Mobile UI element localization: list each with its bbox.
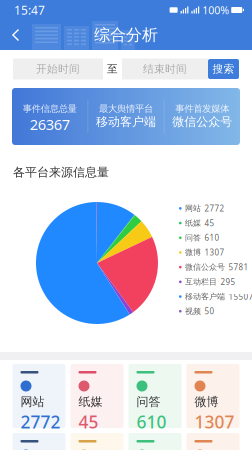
staticText: 2772 — [205, 203, 225, 214]
staticText: 1307 — [205, 247, 225, 258]
staticText: 结束时间 — [143, 62, 187, 75]
button[interactable]: 开始时间 — [13, 58, 103, 79]
staticText: 610 — [205, 232, 220, 243]
staticText: 15507 — [229, 291, 252, 302]
staticText: 至 — [107, 62, 118, 75]
staticText: 610 — [136, 410, 166, 433]
button[interactable]: 网站 — [12, 364, 65, 428]
button[interactable]: 结束时间 — [122, 58, 208, 79]
button[interactable]: 纸媒 — [70, 364, 123, 428]
staticText: 微信公众号 — [185, 262, 225, 272]
staticText: 微博 — [185, 247, 201, 257]
staticText: 问答 — [185, 233, 201, 243]
button[interactable]: 微信 — [12, 433, 65, 450]
staticText: 5781 — [229, 262, 249, 272]
staticText: 纸媒 — [78, 394, 102, 409]
button[interactable]: 微博 — [186, 364, 239, 428]
staticText: 互动栏目 — [185, 277, 217, 287]
staticText: 移动客户端 — [185, 292, 225, 301]
staticText: 45 — [78, 410, 98, 433]
staticText: 事件信息总量 — [23, 103, 77, 114]
staticText: 综合分析 — [94, 25, 158, 45]
staticText: 45 — [205, 218, 215, 228]
staticText: 295 — [221, 276, 236, 287]
button[interactable]: 搜索 — [208, 59, 239, 79]
staticText: 问答 — [136, 394, 160, 409]
button[interactable]: 视频 — [186, 433, 239, 450]
staticText: 微信公众号 — [172, 114, 232, 129]
staticText: 最大舆情平台 — [99, 103, 153, 114]
staticText: 1307 — [194, 410, 234, 433]
button[interactable]: 客户端 — [128, 433, 181, 450]
staticText: 微博 — [194, 394, 218, 409]
staticText: 网站 — [20, 394, 44, 409]
staticText: 各平台来源信息量 — [13, 165, 109, 180]
staticText: 开始时间 — [36, 62, 80, 75]
staticText: 纸媒 — [185, 218, 201, 228]
staticText: 2772 — [20, 410, 60, 433]
staticText: 15:47 — [14, 2, 45, 18]
button[interactable]: 互动 — [70, 433, 123, 450]
staticText: 100% — [202, 3, 229, 17]
staticText: 视频 — [185, 306, 201, 316]
staticText: 事件首发媒体 — [175, 103, 229, 114]
button[interactable]: 问答 — [128, 364, 181, 428]
staticText: 26367 — [30, 114, 70, 134]
staticText: 搜索 — [212, 62, 234, 75]
button[interactable]: Back — [0, 20, 32, 50]
staticText: 网站 — [185, 203, 201, 213]
staticText: 移动客户端 — [96, 114, 156, 129]
staticText: 50 — [205, 306, 215, 316]
